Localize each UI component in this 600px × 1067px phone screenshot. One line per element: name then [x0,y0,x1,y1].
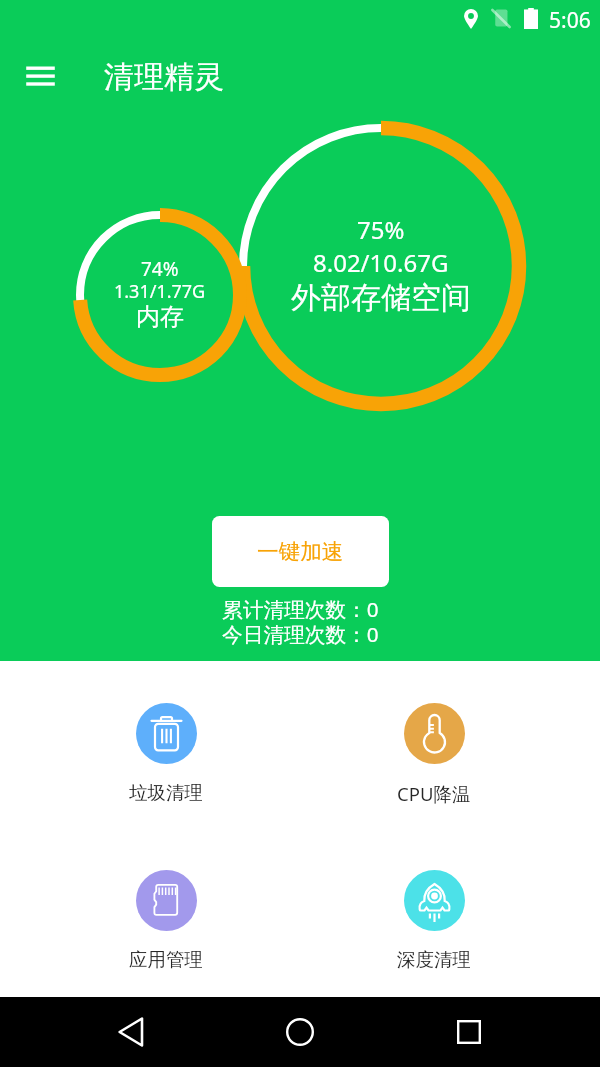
staticText: 外部存储空间 [291,279,471,317]
button[interactable]: 外部存储空间 75% [235,120,527,412]
button[interactable]: 垃圾清理 [32,703,300,804]
button[interactable]: CPU降温 [300,703,568,806]
button[interactable]: 应用管理 [32,870,300,971]
button[interactable]: Back [106,1007,156,1057]
staticText: 应用管理 [129,948,203,971]
button[interactable]: Home [275,1007,325,1057]
staticText: 累计清理次数：0 [222,595,379,623]
staticText: 1.31/1.77G [114,279,206,304]
staticText: 清理精灵 [104,58,224,96]
staticText: 垃圾清理 [129,781,203,804]
staticText: 一键加速 [257,538,344,565]
staticText: 深度清理 [397,948,471,971]
staticText: 今日清理次数：0 [222,620,379,648]
staticText: 75% [357,213,405,246]
button[interactable]: 深度清理 [300,870,568,971]
button[interactable]: 内存 74% [73,208,247,382]
staticText: 内存 [136,302,184,332]
staticText: CPU降温 [397,781,471,806]
button[interactable]: Recents [444,1007,494,1057]
staticText: 8.02/10.67G [313,246,449,279]
staticText: 74% [141,256,179,282]
button[interactable]: 一键加速 [212,516,389,587]
staticText: 5:06 [549,6,591,35]
button[interactable]: Menu [14,56,66,98]
